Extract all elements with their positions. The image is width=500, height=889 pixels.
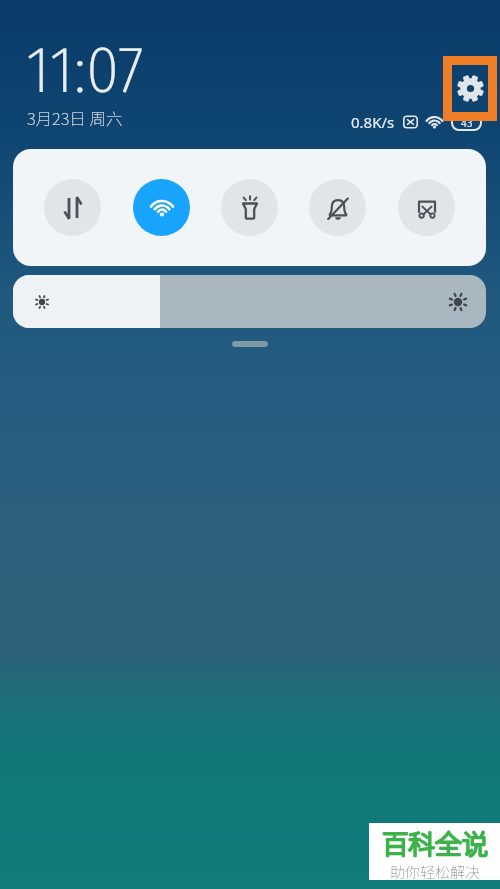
button[interactable]: [398, 179, 455, 236]
button[interactable]: [232, 341, 268, 347]
staticText: 11:07: [26, 30, 144, 109]
staticText: 百科全说: [382, 823, 488, 861]
staticText: 0.8K/s: [351, 112, 395, 132]
button[interactable]: [133, 179, 190, 236]
staticText: 3月23日 周六: [27, 106, 123, 130]
button[interactable]: [13, 275, 486, 328]
button[interactable]: [44, 179, 101, 236]
staticText: 43: [461, 116, 473, 130]
button[interactable]: [309, 179, 366, 236]
button[interactable]: [443, 56, 497, 121]
button[interactable]: [221, 179, 278, 236]
staticText: 助你轻松解决: [390, 861, 481, 880]
staticText: 百科全说: [382, 823, 488, 861]
